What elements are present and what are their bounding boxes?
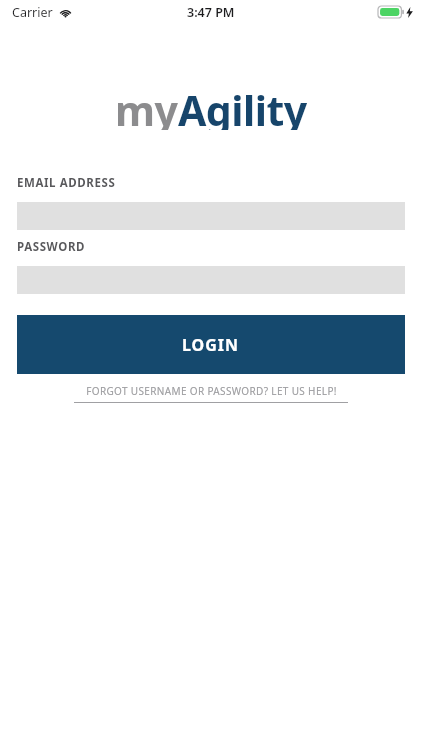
staticText: my	[115, 82, 178, 130]
button[interactable]: FORGOT USERNAME OR PASSWORD? LET US HELP…	[17, 384, 405, 410]
staticText: 3:47 PM	[187, 4, 235, 21]
staticText: Carrier	[12, 4, 53, 21]
button[interactable]: LOGIN	[17, 315, 405, 374]
staticText: EMAIL ADDRESS	[17, 175, 116, 191]
staticText: LOGIN	[182, 334, 240, 356]
staticText: FORGOT USERNAME OR PASSWORD? LET US HELP…	[86, 384, 337, 398]
staticText: PASSWORD	[17, 239, 86, 255]
staticText: Agility	[178, 82, 307, 130]
